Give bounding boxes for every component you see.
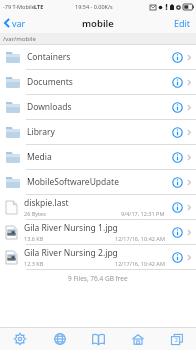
button[interactable]: Library [0,120,196,145]
staticText: LTE [34,3,44,10]
button[interactable]: Downloads [0,95,196,120]
button[interactable]: Tabs [157,328,196,350]
button[interactable]: Info [170,250,184,264]
staticText: /var/mobile [3,35,36,43]
staticText: MobileSoftwareUpdate [27,176,170,188]
button[interactable]: Containers [0,45,196,70]
button[interactable]: Settings [0,328,40,350]
button[interactable]: Info [170,50,184,64]
staticText: 9 Files, 76.4 GB free [68,274,128,283]
staticText: Media [27,151,170,163]
button[interactable]: Browser [40,328,79,350]
button[interactable]: Info [170,150,184,164]
staticText: Gila River Nursing 1.jpg [24,222,118,234]
staticText: mobile [82,17,114,30]
button[interactable]: Info [170,125,184,139]
button[interactable]: Home [118,328,157,350]
button[interactable]: Edit [169,13,196,33]
button[interactable]: var [0,14,32,32]
button[interactable]: Info [170,100,184,114]
staticText: Library [27,126,170,138]
staticText: 12/17/16, 10:42 AM [115,235,165,242]
button[interactable]: MobileSoftwareUpdate [0,170,196,195]
button[interactable]: Info [170,175,184,189]
staticText: -79 T-Mobile [3,3,35,10]
button[interactable]: diskpie.last [0,195,196,220]
staticText: diskpie.last [24,197,69,209]
staticText: var [12,17,26,29]
staticText: Downloads [27,101,170,113]
staticText: Gila River Nursing 2.jpg [24,247,118,259]
button[interactable]: Documents [0,70,196,95]
button[interactable]: Info [170,200,184,214]
staticText: 19:54 - 0.00K/s [75,3,113,10]
staticText: 2 [175,337,178,344]
staticText: Documents [27,76,170,88]
staticText: Containers [27,51,170,63]
button[interactable]: Gila River Nursing 1.jpg [0,220,196,245]
staticText: 12.3 KB [24,260,44,267]
button[interactable]: Gila River Nursing 2.jpg [0,245,196,270]
button[interactable]: Info [170,75,184,89]
button[interactable]: Bookmarks [79,328,118,350]
staticText: 12/17/16, 10:42 AM [115,260,165,267]
staticText: 9/4/17, 12:31 PM [121,210,165,217]
button[interactable]: Media [0,145,196,170]
staticText: 26 Bytes [24,210,46,217]
staticText: 13.6 KB [24,235,44,242]
button[interactable]: Info [170,225,184,239]
